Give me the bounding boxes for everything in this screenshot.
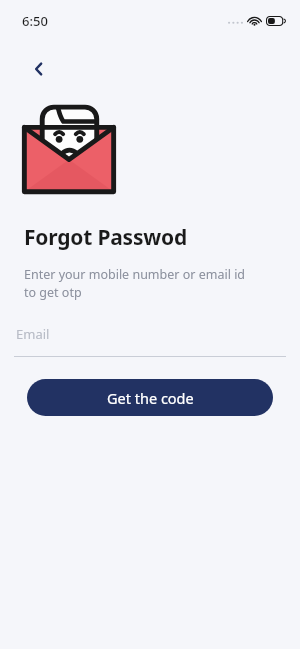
staticText: Email: [16, 325, 50, 343]
button[interactable]: Back: [22, 52, 56, 86]
staticText: Forgot Passwod: [24, 223, 188, 252]
staticText: Enter your mobile number or email id to …: [24, 266, 246, 301]
button[interactable]: Email: [14, 325, 286, 357]
staticText: 6:50: [22, 12, 48, 30]
staticText: Get the code: [107, 388, 194, 408]
button[interactable]: Get the code: [27, 379, 273, 416]
